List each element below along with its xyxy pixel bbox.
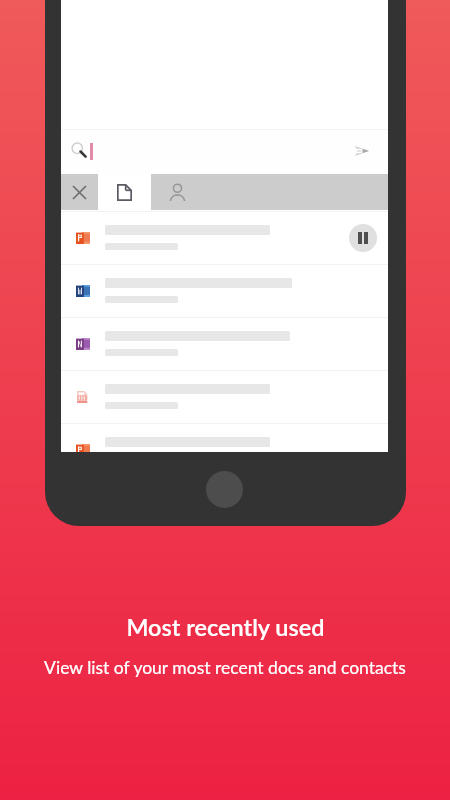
other: Send <box>355 146 369 156</box>
button[interactable]: Pause <box>61 211 388 264</box>
other: People <box>170 184 185 201</box>
other: Close <box>73 186 86 199</box>
button[interactable]: People <box>151 174 204 210</box>
button[interactable]: Close <box>61 174 98 210</box>
button[interactable] <box>61 370 388 423</box>
button[interactable] <box>61 264 388 317</box>
button[interactable] <box>61 317 388 370</box>
staticText: View list of your most recent docs and c… <box>44 657 406 678</box>
button[interactable] <box>61 423 388 452</box>
button[interactable]: Pause <box>349 224 377 252</box>
button[interactable]: Documents <box>98 174 151 210</box>
other: Search <box>70 136 90 156</box>
other: Documents <box>117 184 132 201</box>
staticText: Most recently used <box>126 613 325 641</box>
button[interactable]: Search <box>61 130 388 174</box>
